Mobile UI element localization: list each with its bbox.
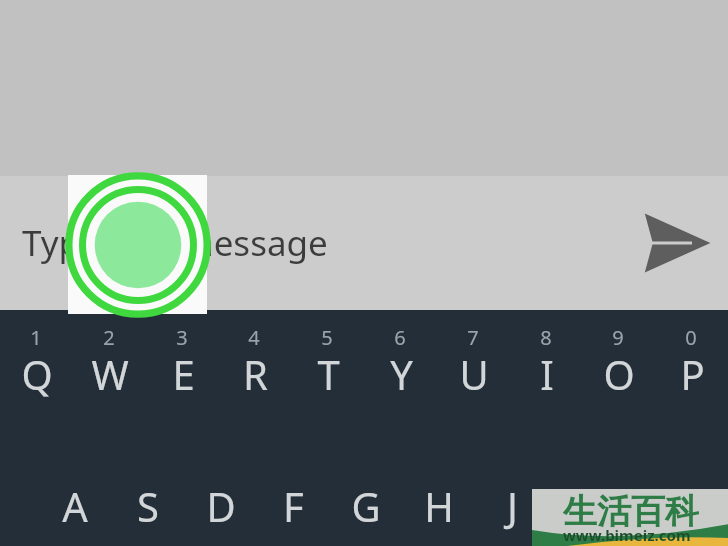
staticText: L (647, 479, 668, 533)
button[interactable]: 3 (158, 320, 206, 354)
staticText: 5 (321, 324, 333, 351)
staticText: www.bimeiz.com (563, 525, 691, 543)
button[interactable]: Y (379, 346, 423, 402)
staticText: Y (390, 347, 413, 401)
staticText: 8 (540, 324, 552, 351)
staticText: F (283, 479, 304, 533)
button[interactable]: W (88, 346, 132, 402)
staticText: 3 (176, 324, 188, 351)
staticText: P (680, 347, 705, 401)
staticText: T (317, 347, 340, 401)
staticText: J (507, 479, 518, 533)
button[interactable]: Tap message field (68, 175, 207, 314)
button[interactable]: 1 (12, 320, 60, 354)
staticText: H (424, 479, 454, 533)
staticText: 7 (467, 324, 479, 351)
button[interactable]: Send (636, 203, 716, 283)
button[interactable]: 2 (85, 320, 133, 354)
button[interactable]: 6 (376, 320, 424, 354)
button[interactable]: J (490, 478, 534, 534)
button[interactable]: F (271, 478, 315, 534)
staticText: 2 (103, 324, 115, 351)
staticText: A (62, 479, 88, 533)
staticText: 0 (685, 324, 697, 351)
staticText: K (573, 479, 598, 533)
button[interactable]: P (670, 346, 714, 402)
button[interactable]: U (452, 346, 496, 402)
button[interactable]: H (417, 478, 461, 534)
button[interactable]: Q (15, 346, 59, 402)
button[interactable]: 4 (230, 320, 278, 354)
staticText: 4 (248, 324, 260, 351)
staticText: 生活百科 (563, 490, 699, 528)
button[interactable]: I (525, 346, 569, 402)
staticText: W (91, 347, 129, 401)
staticText: 1 (30, 324, 42, 351)
button[interactable]: D (199, 478, 243, 534)
button[interactable]: 7 (449, 320, 497, 354)
staticText: R (243, 347, 268, 401)
button[interactable]: 9 (594, 320, 642, 354)
staticText: I (540, 347, 554, 401)
button[interactable]: K (563, 478, 607, 534)
staticText: D (206, 479, 236, 533)
button[interactable]: L (635, 478, 679, 534)
button[interactable]: 8 (522, 320, 570, 354)
staticText: 6 (394, 324, 406, 351)
button[interactable]: R (233, 346, 277, 402)
button[interactable]: E (161, 346, 205, 402)
button[interactable]: 0 (667, 320, 715, 354)
button[interactable]: 5 (303, 320, 351, 354)
staticText: S (137, 479, 159, 533)
button[interactable]: G (344, 478, 388, 534)
staticText: U (459, 347, 489, 401)
staticText: Type text message (22, 219, 328, 267)
staticText: Q (21, 347, 53, 401)
button[interactable]: A (53, 478, 97, 534)
button[interactable]: Type text message (22, 176, 622, 310)
staticText: 9 (612, 324, 624, 351)
button[interactable]: S (126, 478, 170, 534)
staticText: E (172, 347, 195, 401)
button[interactable]: T (306, 346, 350, 402)
staticText: G (351, 479, 381, 533)
staticText: O (603, 347, 635, 401)
button[interactable]: O (597, 346, 641, 402)
